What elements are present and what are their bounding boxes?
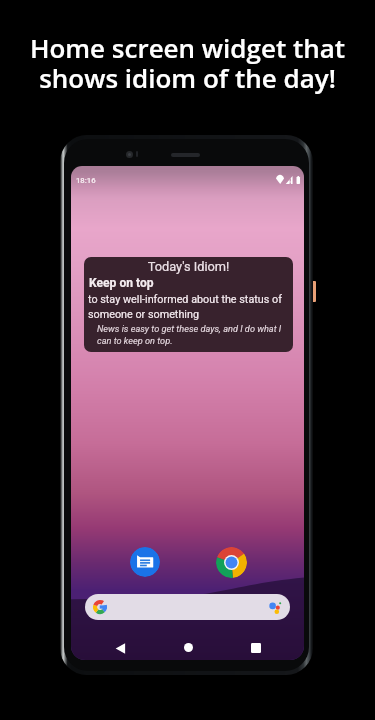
staticText: Keep on top [89, 276, 154, 290]
button[interactable] [85, 594, 290, 620]
staticText: Today's Idiom! [84, 259, 293, 274]
staticText: to stay well-informed about the status o… [88, 293, 288, 321]
button[interactable]: Today's Idiom! [84, 257, 293, 352]
button[interactable]: Home [177, 636, 199, 658]
staticText: News is easy to get these days, and I do… [97, 323, 283, 346]
staticText: Home screen widget that shows idiom of t… [0, 30, 375, 95]
button[interactable]: Back [109, 637, 131, 659]
button[interactable]: Recent apps [245, 637, 267, 659]
button[interactable]: Messages [130, 547, 160, 577]
button[interactable]: Chrome [216, 547, 247, 578]
staticText: 18:16 [76, 176, 96, 185]
